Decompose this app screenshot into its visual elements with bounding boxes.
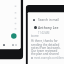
button[interactable]: Sender avatar: [34, 26, 37, 29]
staticText: Search in mail and more: [38, 18, 63, 22]
staticText: meet.example.com/demo: [34, 56, 64, 60]
button[interactable]: Search in mail and more: [31, 17, 63, 22]
button[interactable]: Chats: [3, 44, 5, 46]
button[interactable]: meet.example.com/demo: [31, 56, 64, 60]
button[interactable]: to me: [31, 34, 39, 37]
button[interactable]: Calls: [12, 44, 14, 46]
staticText: to me: [31, 34, 39, 37]
button[interactable]: Anthony Lee: [38, 25, 62, 35]
staticText: Hi there, thanks for sending the detaile…: [31, 39, 62, 55]
staticText: 11:02 AM: [38, 31, 50, 35]
staticText: Anthony Lee: [38, 25, 59, 30]
